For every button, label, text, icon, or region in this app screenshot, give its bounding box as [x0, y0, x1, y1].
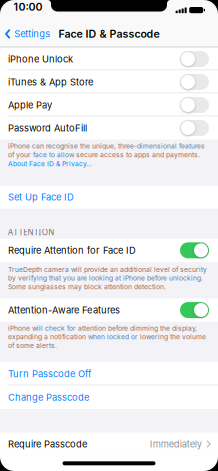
button[interactable]: Require Passcode	[0, 432, 218, 455]
button[interactable]: Back	[0, 28, 50, 40]
staticText: About Face ID & Privacy...	[8, 160, 92, 168]
staticText: ATTENTION	[8, 227, 54, 238]
button[interactable]: Apple Pay	[0, 93, 218, 116]
button[interactable]: Password AutoFill	[0, 116, 218, 139]
staticText: iPhone will check for attention before d…	[8, 324, 197, 332]
staticText: Change Passcode	[8, 392, 89, 403]
staticText: 10:00	[13, 0, 42, 13]
button[interactable]: About Face ID & Privacy...	[8, 160, 92, 168]
staticText: Settings	[14, 28, 50, 40]
staticText: iTunes & App Store	[8, 76, 93, 88]
staticText: expanding a notification when locked or …	[8, 333, 206, 341]
staticText: TrueDepth camera will provide an additio…	[8, 266, 207, 274]
button[interactable]: iPhone Unlock	[0, 47, 218, 70]
staticText: iPhone can recognise the unique, three-d…	[8, 142, 205, 150]
staticText: Some sunglasses may block attention dete…	[8, 283, 166, 291]
button[interactable]: Change Passcode	[0, 385, 218, 409]
staticText: Require Passcode	[8, 438, 87, 450]
button[interactable]: Set Up Face ID	[0, 186, 218, 209]
staticText: Immediately	[150, 438, 202, 450]
staticText: of some alerts.	[8, 341, 57, 349]
staticText: Attention-Aware Features	[8, 304, 120, 316]
button[interactable]: Turn Passcode Off	[0, 362, 218, 385]
staticText: Face ID & Passcode	[58, 27, 159, 40]
button[interactable]: iTunes & App Store	[0, 70, 218, 93]
staticText: Require Attention for Face ID	[8, 245, 136, 256]
staticText: Set Up Face ID	[8, 192, 74, 203]
staticText: Apple Pay	[8, 99, 52, 111]
staticText: of your face to allow secure access to a…	[8, 151, 200, 159]
staticText: Password AutoFill	[8, 122, 87, 134]
staticText: Turn Passcode Off	[8, 368, 91, 379]
staticText: by verifying that you are looking at iPh…	[8, 274, 203, 282]
staticText: iPhone Unlock	[8, 53, 73, 65]
button[interactable]: Require Attention for Face ID	[0, 239, 218, 262]
button[interactable]: Attention-Aware Features	[0, 298, 218, 322]
